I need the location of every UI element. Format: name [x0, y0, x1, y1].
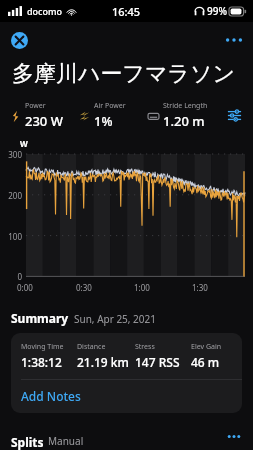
staticText: 0:30: [76, 282, 92, 293]
staticText: 200: [0, 190, 22, 201]
staticText: Summary: [11, 310, 69, 326]
button[interactable]: Chart settings: [219, 98, 249, 132]
staticText: 1.20 m: [163, 112, 205, 130]
button[interactable]: Distance: [77, 342, 135, 370]
staticText: 多摩川ハーフマラソン: [12, 60, 236, 88]
staticText: 230 W: [25, 112, 63, 130]
staticText: Stress: [135, 342, 155, 352]
button[interactable]: Stride Length: [146, 101, 219, 130]
staticText: 0: [0, 271, 22, 282]
staticText: 300: [0, 149, 22, 160]
staticText: 99%: [207, 4, 227, 18]
staticText: 1:38:12: [21, 354, 62, 370]
staticText: W: [20, 138, 28, 149]
button[interactable]: More options: [221, 30, 247, 50]
staticText: 1%: [94, 112, 113, 130]
staticText: 0:00: [17, 282, 33, 293]
staticText: Distance: [77, 342, 106, 352]
button[interactable]: Moving Time: [21, 342, 77, 370]
staticText: Add Notes: [21, 388, 81, 404]
button[interactable]: Close: [9, 30, 29, 50]
button[interactable]: Stress: [135, 342, 191, 370]
staticText: Sun, Apr 25, 2021: [74, 312, 156, 326]
button[interactable]: Power: [8, 101, 77, 130]
staticText: Manual: [48, 434, 84, 448]
staticText: docomo: [27, 5, 63, 17]
staticText: Stride Length: [163, 101, 208, 111]
button[interactable]: Elev Gain: [191, 342, 238, 370]
staticText: 1:30: [192, 282, 208, 293]
button[interactable]: Air Power: [77, 101, 146, 130]
staticText: 1:00: [134, 282, 150, 293]
staticText: Air Power: [94, 101, 126, 111]
staticText: Moving Time: [21, 342, 64, 352]
staticText: 16:45: [112, 4, 141, 19]
staticText: 147 RSS: [135, 354, 180, 370]
staticText: Elev Gain: [191, 342, 222, 352]
staticText: 21.19 km: [77, 354, 129, 370]
staticText: Splits: [11, 434, 44, 450]
staticText: 100: [0, 231, 22, 242]
staticText: 46 m: [191, 354, 220, 370]
staticText: Power: [25, 101, 46, 111]
button[interactable]: Add Notes: [11, 380, 242, 413]
